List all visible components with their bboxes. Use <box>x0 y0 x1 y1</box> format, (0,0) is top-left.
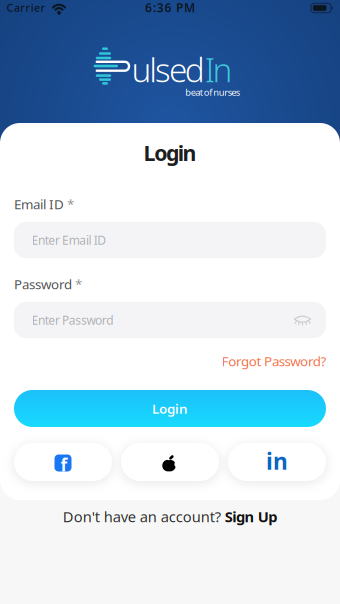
staticText: f <box>60 453 67 476</box>
staticText: ulsed <box>131 47 205 91</box>
button[interactable]: Continue with LinkedIn <box>228 443 326 481</box>
staticText: Carrier <box>7 0 45 15</box>
button[interactable]: Continue with Apple <box>121 443 219 481</box>
button[interactable]: Sign Up <box>225 507 277 526</box>
staticText: 6:36 PM <box>145 0 195 15</box>
button[interactable]: Forgot Password? <box>221 352 326 370</box>
staticText: Don't have an account? <box>63 507 221 526</box>
staticText: Forgot Password? <box>221 352 326 370</box>
staticText: Email ID <box>14 195 64 213</box>
staticText: Login <box>152 400 188 417</box>
button[interactable]: Show password <box>292 314 312 328</box>
staticText: Sign Up <box>225 507 277 526</box>
staticText: Enter Email ID <box>31 232 106 248</box>
staticText: In <box>205 47 232 91</box>
staticText: Enter Password <box>31 312 113 328</box>
staticText: beat of nurses <box>185 86 240 98</box>
button[interactable]: Login <box>14 390 326 427</box>
staticText: * <box>67 195 74 213</box>
staticText: Password <box>14 275 72 293</box>
staticText: in <box>266 446 288 476</box>
button[interactable]: Continue with Facebook <box>14 443 112 481</box>
staticText: Login <box>143 139 197 167</box>
staticText: * <box>75 275 82 293</box>
